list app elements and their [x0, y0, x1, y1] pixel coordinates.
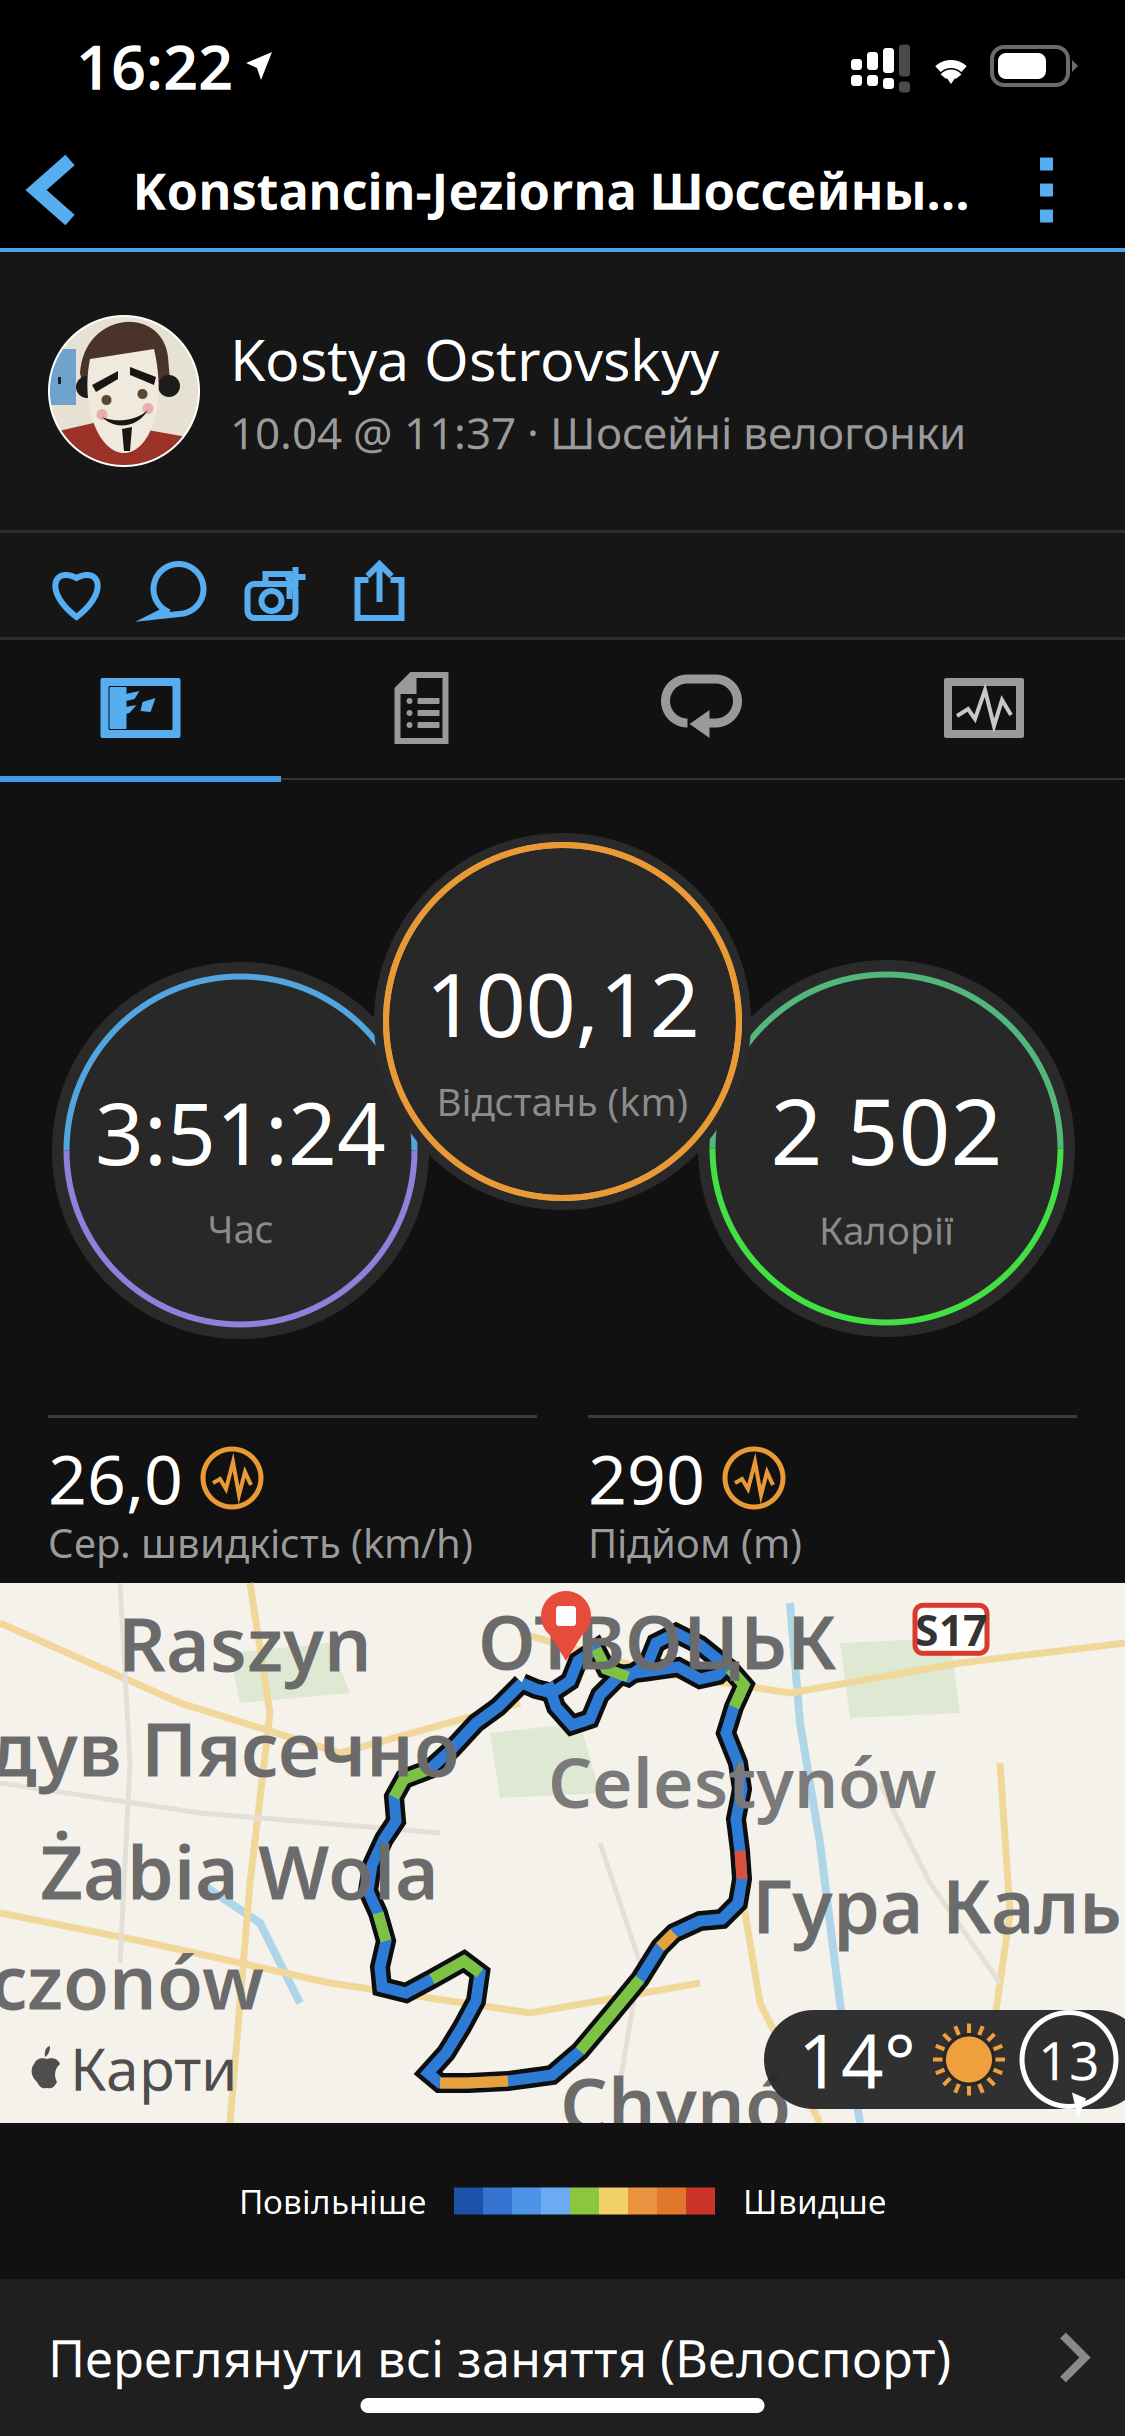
staticText: 2 502 [770, 1070, 1002, 1190]
staticText: 13 [1038, 2024, 1100, 2095]
staticText: Konstancin-Jeziorna Шоссейны… [132, 156, 969, 224]
staticText: Карти [70, 2029, 237, 2107]
staticText: 10.04 @ 11:37 · Шосейні велогонки [230, 403, 966, 461]
staticText: 100,12 [425, 944, 699, 1061]
staticText: 14° [798, 2010, 916, 2109]
button[interactable]: Back [0, 132, 96, 248]
button[interactable]: Add photo [228, 540, 329, 644]
button[interactable]: Details [281, 640, 562, 776]
staticText: Час [207, 1202, 273, 1254]
staticText: 3:51:24 [95, 1075, 386, 1188]
button[interactable]: Laps [562, 640, 843, 776]
staticText: ОТВОЦЬК [478, 1591, 837, 1690]
staticText: 16:22 [76, 25, 233, 107]
staticText: Żabia Wola [40, 1821, 439, 1920]
staticText: Переглянути всі заняття (Велоспорт) [48, 2324, 951, 2391]
staticText: Повільніше [239, 2179, 426, 2223]
staticText: S17 [915, 1601, 987, 1658]
staticText: Chynó [560, 2053, 791, 2152]
staticText: Celestynów [548, 1735, 937, 1827]
staticText: Швидше [743, 2179, 886, 2223]
staticText: Kostya Ostrovskyy [230, 321, 719, 397]
staticText: 290 [588, 1433, 705, 1523]
button[interactable]: Like [26, 540, 127, 644]
button[interactable]: Comment [127, 540, 228, 644]
staticText: Сер. швидкість (km/h) [48, 1516, 473, 1569]
button[interactable]: Переглянути всі заняття (Велоспорт) [0, 2279, 1125, 2436]
staticText: Підйом (m) [588, 1516, 802, 1569]
staticText: 26,0 [48, 1433, 183, 1523]
staticText: Відстань (km) [436, 1075, 688, 1127]
button[interactable]: Map [0, 640, 281, 776]
button[interactable]: Charts [843, 640, 1125, 776]
button[interactable]: More options [1006, 135, 1087, 244]
staticText: czonów [0, 1931, 264, 2030]
button[interactable]: Share [329, 540, 430, 644]
staticText: Калорії [819, 1204, 954, 1255]
staticText: Raszyn [118, 1593, 372, 1692]
staticText: дув Пясечно [0, 1698, 460, 1797]
staticText: Гура Кальв [752, 1855, 1125, 1954]
